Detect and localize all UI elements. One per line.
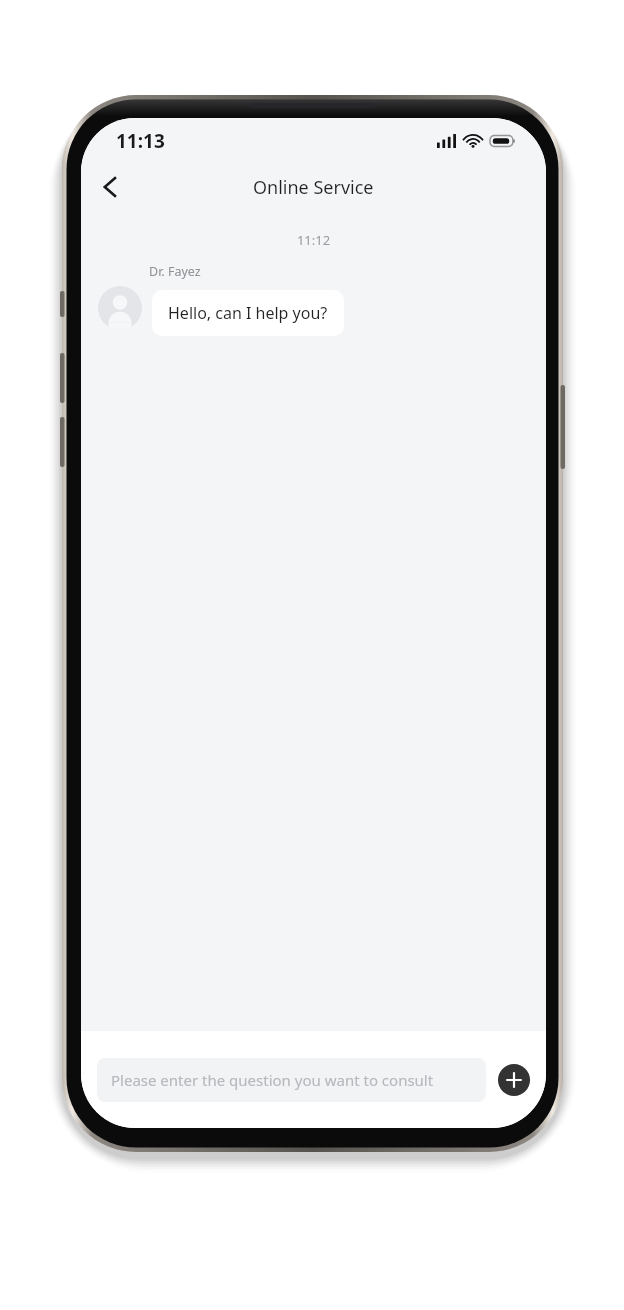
button[interactable]: Hello, can I help you?	[152, 290, 344, 336]
staticText: Please enter the question you want to co…	[111, 1070, 434, 1090]
button[interactable]: Dr. Fayez avatar	[98, 286, 142, 330]
staticText: Online Service	[253, 175, 374, 200]
staticText: 11:12	[81, 231, 546, 249]
button[interactable]: Add attachment	[498, 1064, 530, 1096]
staticText: Dr. Fayez	[149, 263, 201, 280]
staticText: 11:13	[116, 128, 165, 154]
button[interactable]: Back	[87, 164, 133, 210]
button[interactable]: Please enter the question you want to co…	[97, 1058, 486, 1102]
staticText: Hello, can I help you?	[168, 302, 328, 324]
